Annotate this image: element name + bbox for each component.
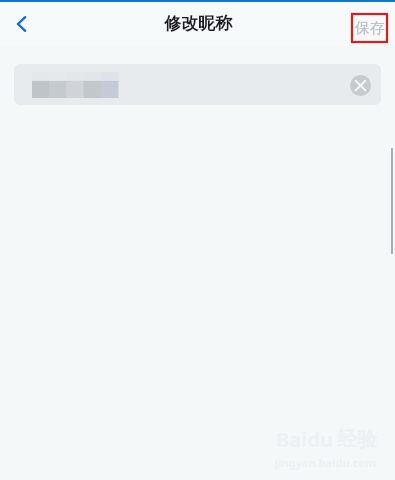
staticText: 修改昵称 xyxy=(164,13,232,34)
button[interactable]: 保存 xyxy=(352,14,387,42)
staticText: 经验 xyxy=(337,427,377,452)
button[interactable]: Back xyxy=(0,2,44,45)
staticText: jingyan.baidu.com xyxy=(275,455,377,470)
staticText: 保存 xyxy=(355,19,385,38)
button[interactable]: Clear text xyxy=(344,69,376,101)
button[interactable]: Clear text xyxy=(14,64,381,105)
staticText: Baidu xyxy=(276,426,333,453)
